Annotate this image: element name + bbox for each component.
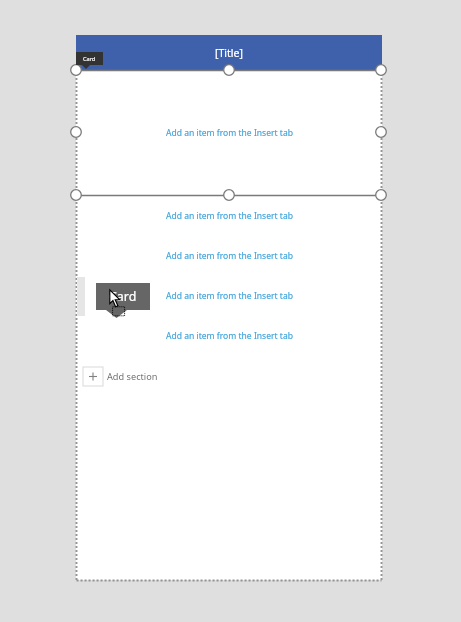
button[interactable]: Add an item from the Insert tab [166, 127, 293, 139]
staticText: Card [109, 288, 137, 305]
button[interactable]: Resize handle [375, 64, 387, 76]
button[interactable]: Resize handle [375, 189, 387, 201]
staticText: Add section [107, 370, 158, 383]
button[interactable]: Add an item from the Insert tab [166, 210, 293, 222]
button[interactable]: Add an item from the Insert tab [166, 250, 293, 262]
staticText: Add an item from the Insert tab [166, 290, 293, 302]
button[interactable]: Resize handle [375, 126, 387, 138]
button[interactable]: Resize handle [70, 189, 82, 201]
staticText: Add an item from the Insert tab [166, 330, 293, 342]
button[interactable]: Resize handle [223, 189, 235, 201]
button[interactable]: Resize handle [70, 126, 82, 138]
button[interactable]: Add section [83, 367, 158, 386]
button[interactable]: Resize handle [70, 64, 82, 76]
button[interactable]: Add an item from the Insert tab [166, 330, 293, 342]
button[interactable]: [Title] [76, 35, 382, 70]
staticText: Add an item from the Insert tab [166, 210, 293, 222]
other: Cursor [109, 289, 133, 319]
staticText: Add an item from the Insert tab [166, 250, 293, 262]
staticText: Card [83, 55, 96, 63]
button[interactable]: Add an item from the Insert tab [166, 290, 293, 302]
button[interactable]: Resize handle [223, 64, 235, 76]
staticText: Add an item from the Insert tab [166, 127, 293, 139]
staticText: [Title] [215, 46, 243, 60]
